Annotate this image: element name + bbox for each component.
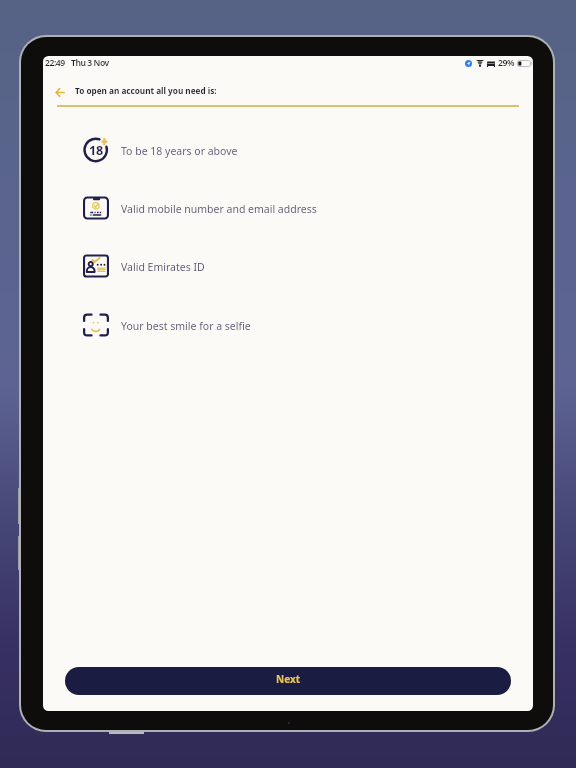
staticText: Next xyxy=(276,672,301,686)
staticText: Thu 3 Nov xyxy=(71,57,109,69)
button[interactable]: Your best smile for a selfie xyxy=(82,311,251,339)
button[interactable]: Back xyxy=(49,81,71,103)
button[interactable]: Next xyxy=(65,667,511,695)
staticText: Your best smile for a selfie xyxy=(121,319,251,333)
staticText: To be 18 years or above xyxy=(121,144,238,158)
button[interactable]: Valid mobile number and email address xyxy=(82,194,317,222)
button[interactable]: Valid Emirates ID xyxy=(82,252,205,280)
staticText: Valid mobile number and email address xyxy=(121,202,317,216)
staticText: 22:49 xyxy=(45,57,65,69)
staticText: Valid Emirates ID xyxy=(121,260,205,274)
button[interactable]: 18 xyxy=(82,136,238,164)
staticText: 29% xyxy=(498,57,515,69)
staticText: 18 xyxy=(89,142,103,159)
staticText: To open an account all you need is: xyxy=(75,85,217,96)
